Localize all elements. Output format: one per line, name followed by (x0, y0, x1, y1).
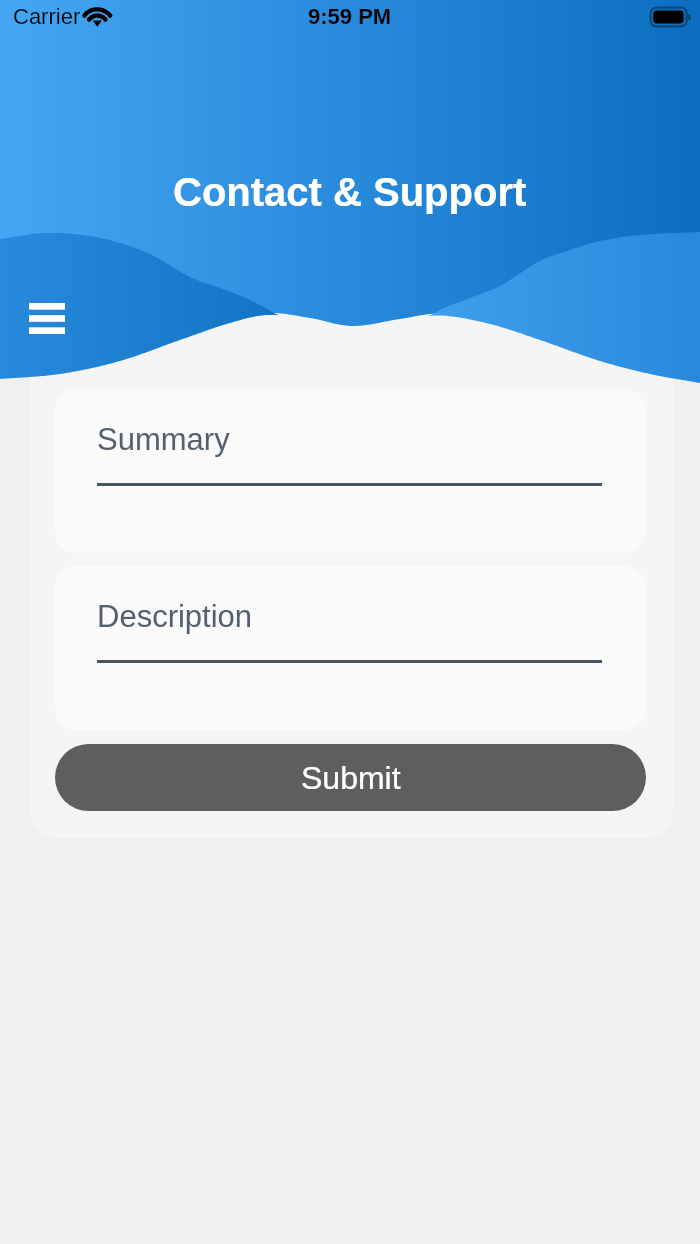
staticText: Contact & Support (173, 170, 527, 215)
button[interactable]: Menu (16, 292, 78, 344)
staticText: Summary (97, 422, 230, 457)
staticText: 9:59 PM (308, 4, 392, 29)
staticText: Description (97, 599, 253, 634)
staticText: Submit (301, 760, 401, 796)
button[interactable]: Summary (55, 389, 646, 553)
button[interactable]: Description (55, 566, 646, 730)
button[interactable]: Submit (55, 744, 646, 811)
staticText: Carrier (13, 4, 81, 29)
